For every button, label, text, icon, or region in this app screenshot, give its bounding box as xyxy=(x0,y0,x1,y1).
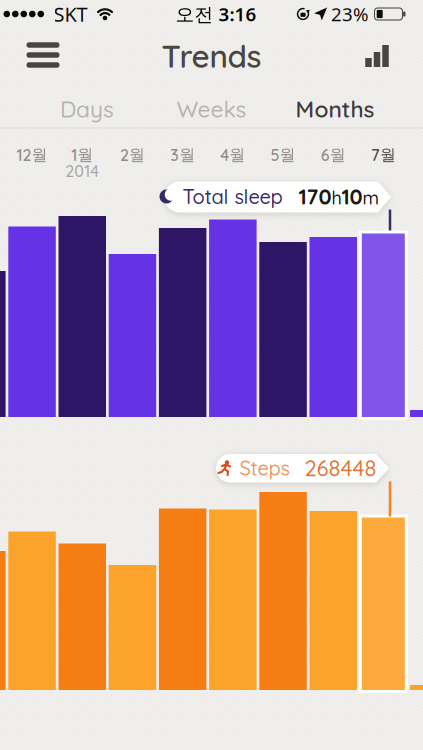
staticText: Months xyxy=(295,95,374,123)
button[interactable]: Days xyxy=(60,95,114,123)
staticText: Steps xyxy=(239,455,289,480)
staticText: 4월 xyxy=(220,145,245,165)
staticText: 6월 xyxy=(321,145,346,165)
staticText: 12월 xyxy=(16,145,47,165)
button[interactable]: 12월 total sleep xyxy=(8,226,56,417)
button[interactable]: 11월 total sleep xyxy=(0,271,6,417)
button[interactable]: 11월 steps xyxy=(0,551,6,690)
button[interactable]: 1월 steps xyxy=(58,543,106,690)
staticText: 23% xyxy=(331,2,369,26)
staticText: 1월 xyxy=(71,145,93,165)
button[interactable]: 1월 total sleep xyxy=(58,216,106,417)
button[interactable]: 7월 steps xyxy=(359,514,408,693)
button[interactable]: 4월 total sleep xyxy=(209,219,257,417)
button[interactable]: Weeks xyxy=(176,95,246,123)
staticText: Total sleep xyxy=(182,184,282,209)
button[interactable]: Months xyxy=(295,95,374,123)
staticText: 2월 xyxy=(120,145,145,165)
button[interactable]: 5월 total sleep xyxy=(259,242,307,417)
staticText: Weeks xyxy=(176,95,246,123)
staticText: 오전 3:16 xyxy=(175,2,256,26)
staticText: 170h10m xyxy=(298,183,378,209)
button[interactable]: Menu xyxy=(21,37,65,73)
button[interactable]: 4월 steps xyxy=(209,509,257,690)
button[interactable]: 12월 steps xyxy=(8,531,56,690)
staticText: 7월 xyxy=(371,145,396,165)
staticText: 268448 xyxy=(304,454,376,482)
staticText: Days xyxy=(60,95,114,123)
button[interactable]: 3월 steps xyxy=(159,508,206,690)
staticText: 3월 xyxy=(170,145,195,165)
button[interactable]: 5월 steps xyxy=(259,492,307,690)
staticText: 5월 xyxy=(271,145,296,165)
staticText: Trends xyxy=(161,36,261,76)
staticText: SKT xyxy=(53,1,87,27)
staticText: 2014 xyxy=(65,161,99,181)
button[interactable]: Charts xyxy=(362,43,392,69)
button[interactable]: 7월 total sleep xyxy=(359,230,408,420)
